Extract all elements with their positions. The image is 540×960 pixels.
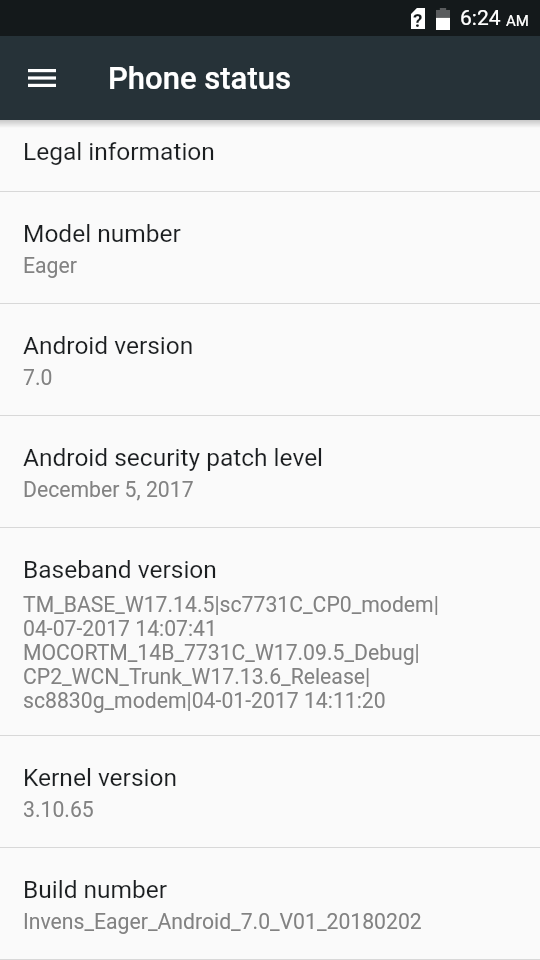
staticText: Phone status (108, 60, 291, 96)
button[interactable]: Android security patch level (0, 416, 540, 527)
staticText: Eager (23, 253, 77, 278)
button[interactable]: Android version (0, 304, 540, 415)
staticText: TM_BASE_W17.14.5|sc7731C_CP0_modem| 04-0… (23, 592, 439, 713)
staticText: 3.10.65 (23, 797, 94, 822)
staticText: December 5, 2017 (23, 477, 194, 502)
button[interactable]: Legal information (0, 120, 540, 191)
button[interactable]: Model number (0, 192, 540, 303)
staticText: Legal information (23, 137, 215, 166)
staticText: Model number (23, 219, 181, 248)
staticText: AM (506, 12, 529, 30)
staticText: 6:24 (460, 6, 501, 31)
staticText: Android version (23, 331, 194, 360)
staticText: Kernel version (23, 763, 178, 792)
staticText: Invens_Eager_Android_7.0_V01_20180202 (23, 909, 422, 934)
button[interactable]: Baseband version (0, 528, 540, 735)
staticText: Build number (23, 875, 168, 904)
staticText: 7.0 (23, 365, 53, 390)
staticText: ? (413, 9, 423, 29)
button[interactable]: Kernel version (0, 736, 540, 847)
button[interactable]: Navigation menu (12, 48, 72, 108)
staticText: Android security patch level (23, 443, 324, 472)
staticText: Baseband version (23, 555, 217, 584)
button[interactable]: Build number (0, 848, 540, 959)
